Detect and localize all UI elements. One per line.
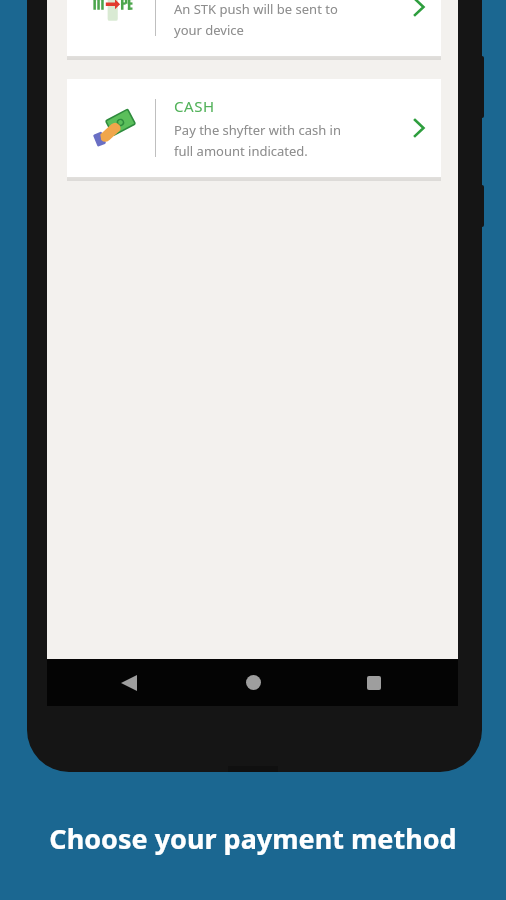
staticText: An STK push will be sent to xyxy=(174,0,338,18)
button[interactable]: Pay with M-PESA xyxy=(67,0,441,56)
staticText: full amount indicated. xyxy=(174,142,308,160)
button[interactable]: Recent apps xyxy=(344,659,404,706)
staticText: Pay the shyfter with cash in xyxy=(174,121,341,139)
button[interactable]: Pay with cash xyxy=(67,79,441,177)
staticText: Choose your payment method xyxy=(0,820,506,857)
staticText: your device xyxy=(174,21,244,39)
staticText: CASH xyxy=(174,96,215,116)
button[interactable]: Back xyxy=(99,659,159,706)
button[interactable]: Home xyxy=(223,659,283,706)
